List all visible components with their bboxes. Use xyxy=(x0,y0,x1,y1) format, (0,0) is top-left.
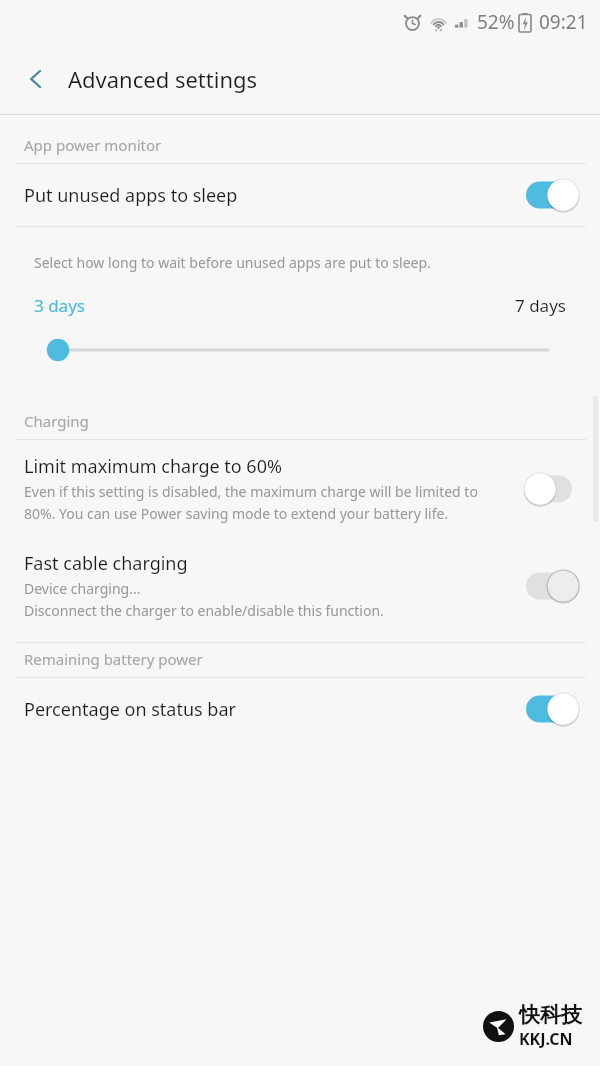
button[interactable]: On xyxy=(526,178,582,212)
staticText: 09:21 xyxy=(539,9,588,35)
button[interactable]: Percentage on status bar xyxy=(0,678,600,740)
staticText: App power monitor xyxy=(24,135,162,155)
button[interactable]: Limit maximum charge to 60% xyxy=(0,440,600,537)
button[interactable]: Off xyxy=(526,472,582,506)
button[interactable]: Put unused apps to sleep xyxy=(0,164,600,226)
staticText: Percentage on status bar xyxy=(24,697,236,722)
button[interactable]: Navigate up xyxy=(14,57,58,101)
button[interactable]: On xyxy=(526,692,582,726)
staticText: 3 days xyxy=(34,294,85,317)
staticText: Charging xyxy=(24,411,89,431)
staticText: Advanced settings xyxy=(68,64,258,94)
staticText: Fast cable charging xyxy=(24,551,188,576)
button[interactable]: Fast cable charging xyxy=(0,537,600,634)
staticText: Limit maximum charge to 60% xyxy=(24,454,282,479)
staticText: KKJ.CN xyxy=(519,1028,573,1050)
staticText: 快科技 xyxy=(519,1002,582,1028)
staticText: Select how long to wait before unused ap… xyxy=(34,253,431,272)
button[interactable]: Sleep delay slider xyxy=(0,333,600,367)
staticText: Device charging... Disconnect the charge… xyxy=(24,579,384,620)
button[interactable]: On xyxy=(526,569,582,603)
staticText: 7 days xyxy=(515,294,566,317)
staticText: Remaining battery power xyxy=(24,649,203,669)
staticText: Put unused apps to sleep xyxy=(24,183,238,208)
staticText: 52% xyxy=(477,9,515,35)
staticText: Even if this setting is disabled, the ma… xyxy=(24,482,512,523)
